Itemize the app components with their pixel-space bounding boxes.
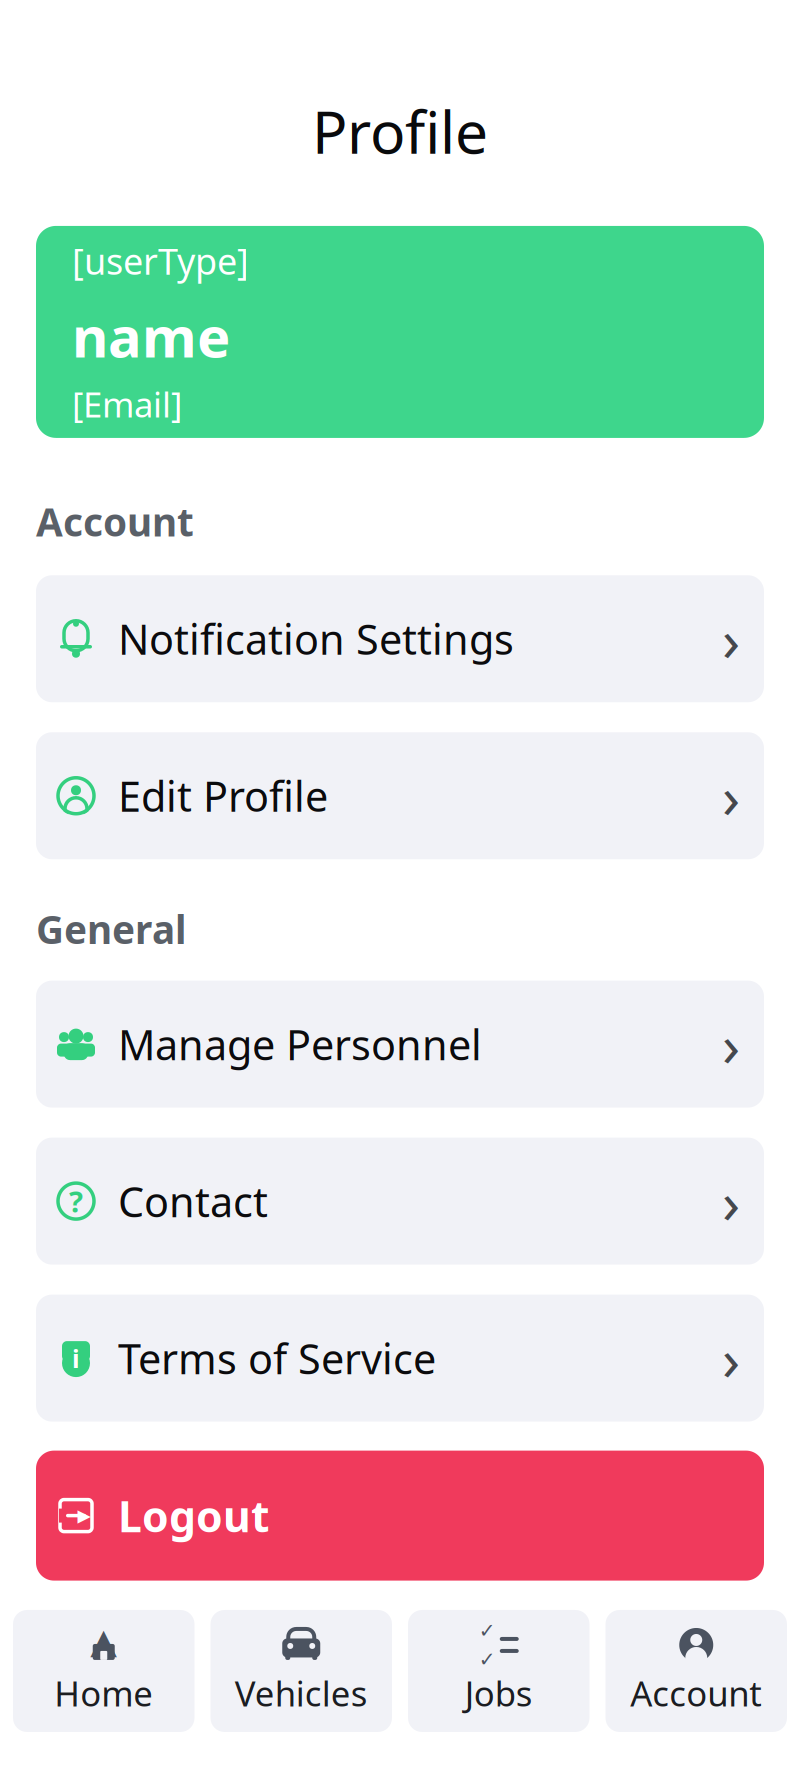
staticText: Manage Personnel [118,1017,482,1072]
staticText: Vehicles [235,1670,368,1716]
button[interactable]: Manage Personnel [36,981,764,1108]
staticText: › [722,1162,740,1240]
staticText: › [722,1005,740,1083]
staticText: Notification Settings [118,611,514,666]
staticText: ✓ [479,1648,496,1671]
staticText: ▲ [90,1621,117,1661]
button[interactable]: ▶ [36,1451,764,1581]
button[interactable]: ? [36,1138,764,1265]
button[interactable]: ▲ [13,1610,194,1732]
button[interactable]: i [36,1295,764,1422]
staticText: › [722,600,740,678]
button[interactable]: Account [605,1610,787,1732]
staticText: ✓ [479,1619,496,1642]
staticText: [Email] [72,381,182,427]
staticText: Jobs [465,1670,533,1716]
staticText: Home [54,1670,153,1716]
staticText: Profile [312,92,488,170]
staticText: Logout [118,1487,270,1544]
staticText: General [36,903,187,955]
button[interactable]: Edit Profile [36,732,764,859]
staticText: Account [630,1670,762,1716]
staticText: Contact [118,1174,268,1229]
button[interactable]: Vehicles [210,1610,392,1732]
staticText: [userType] [72,237,249,285]
staticText: ▶ [77,1506,90,1525]
staticText: i [72,1341,80,1375]
staticText: ? [69,1182,83,1221]
staticText: › [722,757,740,835]
staticText: Terms of Service [118,1331,436,1386]
button[interactable]: ✓ [408,1610,589,1732]
staticText: name [72,299,230,373]
staticText: Account [36,496,194,547]
staticText: Edit Profile [118,768,328,823]
button[interactable]: Notification Settings [36,575,764,702]
staticText: › [722,1319,740,1397]
